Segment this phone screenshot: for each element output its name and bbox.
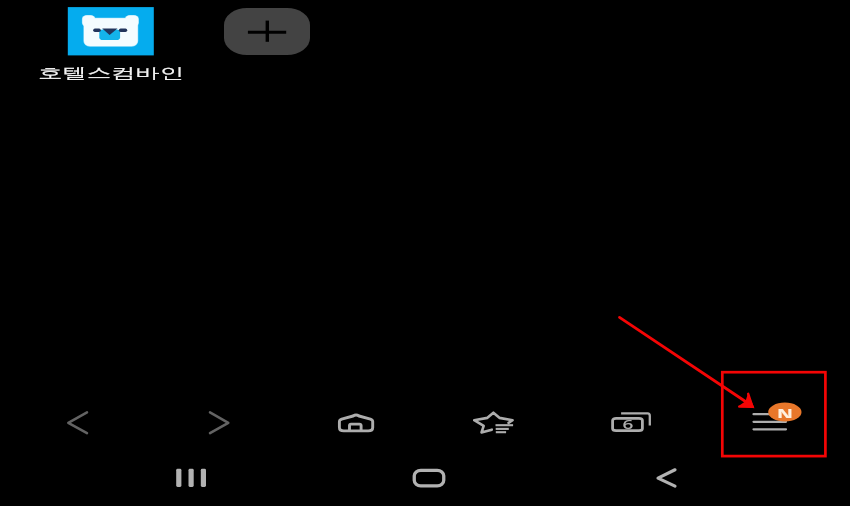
button[interactable]: Bookmarks [463, 400, 523, 445]
button[interactable]: New tab [224, 8, 310, 55]
button[interactable]: 호텔스컴바인 [34, 2, 188, 88]
button[interactable]: Forward [189, 400, 249, 445]
button[interactable]: Home [326, 400, 386, 445]
button[interactable]: Tabs, 6 open [601, 400, 661, 445]
button[interactable]: Menu [743, 400, 803, 445]
button[interactable]: Back [47, 400, 107, 445]
staticText: N [764, 404, 806, 418]
staticText: 호텔스컴바인 [0, 64, 240, 86]
button[interactable]: Back [637, 458, 697, 498]
staticText: 6 [605, 416, 650, 432]
button[interactable]: Home [398, 458, 458, 498]
button[interactable]: Recent apps [161, 458, 221, 498]
